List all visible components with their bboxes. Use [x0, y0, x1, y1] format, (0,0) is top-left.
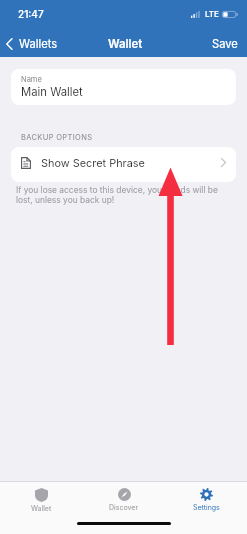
- staticText: Settings: [193, 503, 220, 511]
- other: Battery: [222, 11, 238, 18]
- button[interactable]: Wallet: [15, 486, 68, 514]
- staticText: LTE: [205, 9, 219, 19]
- button[interactable]: Save: [200, 32, 247, 56]
- staticText: BACKUP OPTIONS: [21, 133, 93, 142]
- other: Back: [6, 38, 13, 50]
- staticText: Wallet: [31, 504, 52, 512]
- staticText: Name: [21, 75, 42, 84]
- staticText: Main Wallet: [21, 85, 83, 99]
- staticText: Discover: [109, 503, 139, 511]
- button[interactable]: Back: [0, 32, 66, 56]
- button[interactable]: Name: [11, 69, 236, 105]
- staticText: Wallet: [108, 37, 143, 51]
- staticText: If you lose access to this device, your …: [16, 185, 219, 205]
- button[interactable]: Discover: [93, 486, 155, 513]
- staticText: 21:47: [18, 8, 44, 20]
- button[interactable]: Show Secret Phrase: [11, 147, 236, 182]
- other: Signal strength: [191, 11, 200, 18]
- staticText: Show Secret Phrase: [41, 156, 145, 169]
- button[interactable]: Settings: [177, 486, 236, 513]
- staticText: Wallets: [19, 37, 58, 51]
